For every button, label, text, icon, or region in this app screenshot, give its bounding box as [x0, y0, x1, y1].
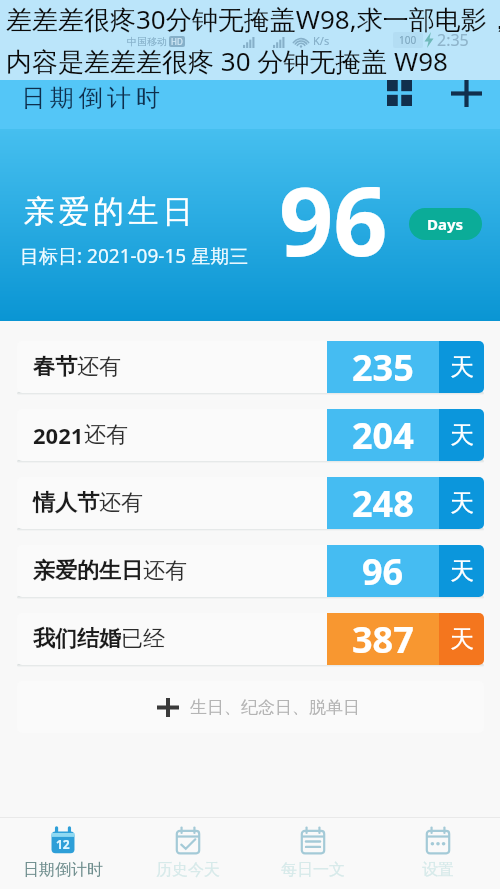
staticText: 12	[56, 836, 70, 852]
staticText: 204	[352, 411, 414, 460]
staticText: 差差差很疼30分钟无掩盖W98,求一部电影， 内容是差差差很疼 30 分钟无掩盖…	[6, 1, 500, 79]
staticText: 天	[450, 352, 474, 382]
staticText: HD	[171, 36, 183, 47]
staticText: 2:35	[437, 29, 469, 51]
button[interactable]: Grid view	[379, 73, 419, 113]
button[interactable]: Add	[446, 73, 486, 113]
button[interactable]: 亲爱的生日	[0, 129, 500, 321]
button[interactable]: 情人节	[17, 477, 484, 529]
staticText: Days	[427, 214, 464, 234]
button[interactable]: Days	[409, 208, 482, 240]
staticText: 天	[450, 556, 474, 586]
staticText: 235	[352, 343, 414, 392]
staticText: K/s	[313, 33, 330, 48]
staticText: 每日一文	[281, 860, 345, 880]
staticText: 2021	[33, 420, 84, 450]
staticText: 还有	[99, 489, 143, 517]
button[interactable]: 12	[0, 818, 125, 889]
button[interactable]: 生日、纪念日、脱单日	[17, 681, 484, 733]
staticText: 设置	[422, 860, 454, 880]
staticText: 387	[352, 615, 414, 664]
button[interactable]: 2021	[17, 409, 484, 461]
staticText: 我们结婚	[33, 625, 121, 653]
staticText: 亲爱的生日	[33, 557, 143, 585]
staticText: 96	[362, 547, 404, 596]
button[interactable]: 春节	[17, 341, 484, 393]
staticText: 情人节	[33, 489, 99, 517]
staticText: 生日、纪念日、脱单日	[190, 697, 360, 718]
staticText: 已经	[121, 625, 165, 653]
staticText: 天	[450, 488, 474, 518]
button[interactable]: 每日一文	[250, 818, 375, 889]
staticText: 96	[279, 154, 388, 274]
staticText: 还有	[84, 421, 128, 449]
button[interactable]: 设置	[375, 818, 500, 889]
button[interactable]: 历史今天	[125, 818, 250, 889]
staticText: 日期倒计时	[19, 83, 162, 113]
staticText: 还有	[143, 557, 187, 585]
button[interactable]: 亲爱的生日	[17, 545, 484, 597]
staticText: 亲爱的生日	[22, 192, 195, 231]
button[interactable]: 我们结婚	[17, 613, 484, 665]
staticText: 春节	[33, 353, 77, 381]
staticText: 日期倒计时	[23, 860, 103, 880]
staticText: 天	[450, 624, 474, 654]
staticText: 还有	[77, 353, 121, 381]
staticText: 历史今天	[156, 860, 220, 880]
staticText: 目标日: 2021-09-15 星期三	[20, 243, 249, 269]
staticText: 100	[399, 33, 417, 47]
staticText: 中国移动	[127, 35, 167, 48]
staticText: 248	[352, 479, 414, 528]
staticText: 天	[450, 420, 474, 450]
